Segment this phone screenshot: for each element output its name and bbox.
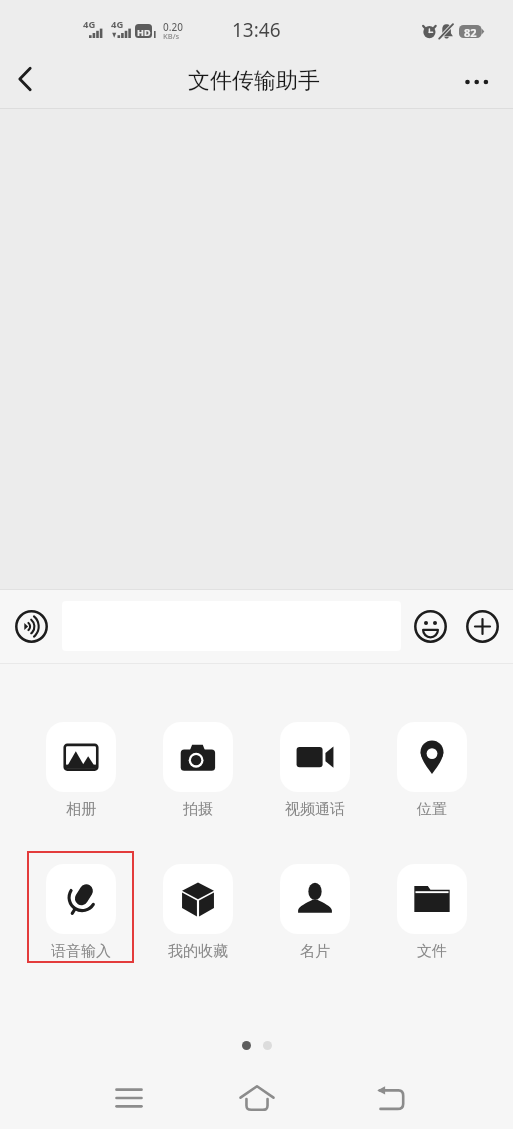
staticText: 拍摄 bbox=[183, 800, 213, 819]
button[interactable]: More functions bbox=[460, 604, 505, 649]
staticText: 82 bbox=[464, 25, 477, 40]
button[interactable]: 语音输入 bbox=[27, 851, 134, 963]
button[interactable]: Voice input bbox=[9, 604, 54, 649]
staticText: 文件传输助手 bbox=[188, 67, 320, 95]
button[interactable]: 名片 bbox=[261, 851, 368, 963]
button[interactable]: 我的收藏 bbox=[144, 851, 251, 963]
button[interactable]: Emoji bbox=[408, 604, 453, 649]
staticText: 4G bbox=[111, 18, 124, 31]
button[interactable]: 位置 bbox=[378, 709, 485, 821]
staticText: 位置 bbox=[417, 800, 447, 819]
staticText: 名片 bbox=[300, 942, 330, 961]
button[interactable]: 视频通话 bbox=[261, 709, 368, 821]
staticText: KB/s bbox=[163, 31, 180, 41]
button[interactable]: More options bbox=[453, 55, 513, 109]
button[interactable]: 拍摄 bbox=[144, 709, 251, 821]
staticText: 语音输入 bbox=[51, 942, 111, 961]
staticText: 4G bbox=[83, 18, 96, 31]
staticText: 0.20 bbox=[163, 20, 183, 34]
button[interactable]: 相册 bbox=[27, 709, 134, 821]
staticText: HD bbox=[137, 26, 151, 38]
button[interactable]: Recent apps bbox=[99, 1073, 159, 1123]
button[interactable]: Home bbox=[227, 1073, 287, 1123]
button[interactable]: Back bbox=[360, 1073, 420, 1123]
button[interactable]: 文件 bbox=[378, 851, 485, 963]
staticText: 文件 bbox=[417, 942, 447, 961]
staticText: 相册 bbox=[66, 800, 96, 819]
staticText: 视频通话 bbox=[285, 800, 345, 819]
button[interactable]: Back bbox=[0, 55, 52, 109]
staticText: 13:46 bbox=[232, 17, 281, 43]
staticText: 我的收藏 bbox=[168, 942, 228, 961]
